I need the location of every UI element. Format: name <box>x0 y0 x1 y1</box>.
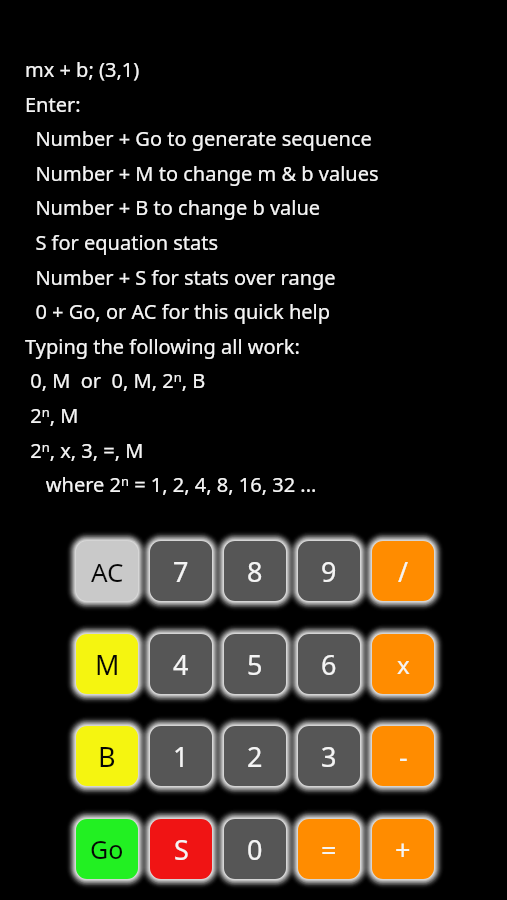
staticText: Number + B to change b value <box>25 194 321 221</box>
staticText: M <box>95 646 120 683</box>
staticText: where 2n = 1, 2, 4, 8, 16, 32 ... <box>25 471 317 498</box>
staticText: - <box>399 738 408 775</box>
staticText: 2n, x, 3, =, M <box>25 437 144 464</box>
button[interactable]: Add <box>360 807 446 891</box>
staticText: 7 <box>173 553 189 590</box>
button[interactable]: Go <box>64 807 150 891</box>
staticText: Number + M to change m & b values <box>25 160 379 187</box>
button[interactable]: 6 <box>286 622 372 706</box>
staticText: x <box>397 648 410 681</box>
button[interactable]: 7 <box>138 529 224 613</box>
button[interactable]: M <box>64 622 150 706</box>
staticText: 0 <box>247 831 263 868</box>
button[interactable]: Divide <box>360 529 446 613</box>
staticText: Enter: <box>25 91 81 118</box>
staticText: Go <box>90 832 124 866</box>
button[interactable]: Multiply <box>360 622 446 706</box>
button[interactable]: 3 <box>286 714 372 798</box>
button[interactable]: Equals <box>286 807 372 891</box>
staticText: / <box>398 553 409 590</box>
staticText: 0, M or 0, M, 2n, B <box>25 367 206 394</box>
button[interactable]: 9 <box>286 529 372 613</box>
button[interactable]: 0 <box>212 807 298 891</box>
staticText: AC <box>91 554 124 589</box>
button[interactable]: B <box>64 714 150 798</box>
button[interactable]: Subtract <box>360 714 446 798</box>
button[interactable]: S <box>138 807 224 891</box>
staticText: 3 <box>321 738 337 775</box>
staticText: 4 <box>173 646 189 683</box>
staticText: 2 <box>247 738 263 775</box>
button[interactable]: 4 <box>138 622 224 706</box>
staticText: 1 <box>173 738 189 775</box>
staticText: 5 <box>247 646 263 683</box>
staticText: S for equation stats <box>25 229 219 256</box>
staticText: B <box>98 738 116 775</box>
staticText: + <box>395 831 411 868</box>
staticText: 0 + Go, or AC for this quick help <box>25 298 331 325</box>
button[interactable]: 8 <box>212 529 298 613</box>
staticText: 2n, M <box>25 402 79 429</box>
staticText: mx + b; (3,1) <box>25 56 140 83</box>
button[interactable]: 2 <box>212 714 298 798</box>
staticText: S <box>174 831 189 868</box>
staticText: 9 <box>321 553 337 590</box>
staticText: Number + Go to generate sequence <box>25 125 372 152</box>
button[interactable]: AC <box>64 529 150 613</box>
button[interactable]: 5 <box>212 622 298 706</box>
button[interactable]: 1 <box>138 714 224 798</box>
staticText: Number + S for stats over range <box>25 264 336 291</box>
staticText: 6 <box>321 646 337 683</box>
staticText: 8 <box>247 553 263 590</box>
staticText: Typing the following all work: <box>25 333 300 360</box>
staticText: = <box>321 831 337 868</box>
